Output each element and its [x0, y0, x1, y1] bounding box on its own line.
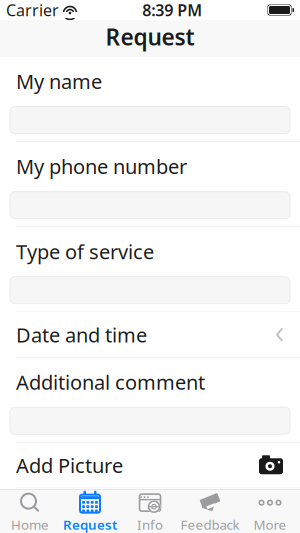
button[interactable]: Info — [120, 487, 180, 533]
staticText: Date and time — [16, 321, 147, 348]
staticText: Additional comment — [16, 369, 205, 395]
staticText: My phone number — [16, 153, 187, 180]
button[interactable]: Feedback — [180, 487, 240, 533]
staticText: Home — [11, 516, 49, 533]
staticText: Carrier — [6, 0, 59, 21]
button[interactable]: Date and time — [0, 312, 300, 358]
button[interactable]: Include my location — [0, 488, 300, 533]
button[interactable]: Home — [0, 487, 60, 533]
staticText: Type of service — [16, 238, 154, 265]
button[interactable]: Add Picture — [0, 443, 300, 488]
button[interactable]: My phone number — [0, 142, 300, 227]
button[interactable]: My name — [0, 57, 300, 142]
button[interactable]: Additional comment — [0, 358, 300, 443]
staticText: Feedback — [180, 516, 239, 533]
staticText: Add Picture — [16, 452, 123, 479]
staticText: Include my location — [16, 498, 198, 525]
staticText: Info — [137, 516, 163, 533]
staticText: More — [253, 516, 286, 533]
button[interactable]: More — [240, 487, 300, 533]
staticText: Request — [105, 22, 194, 52]
staticText: Request — [63, 516, 117, 533]
staticText: My name — [16, 68, 102, 95]
button[interactable]: Request — [60, 487, 120, 533]
button[interactable]: Type of service — [0, 227, 300, 312]
staticText: 8:39 PM — [142, 0, 202, 21]
